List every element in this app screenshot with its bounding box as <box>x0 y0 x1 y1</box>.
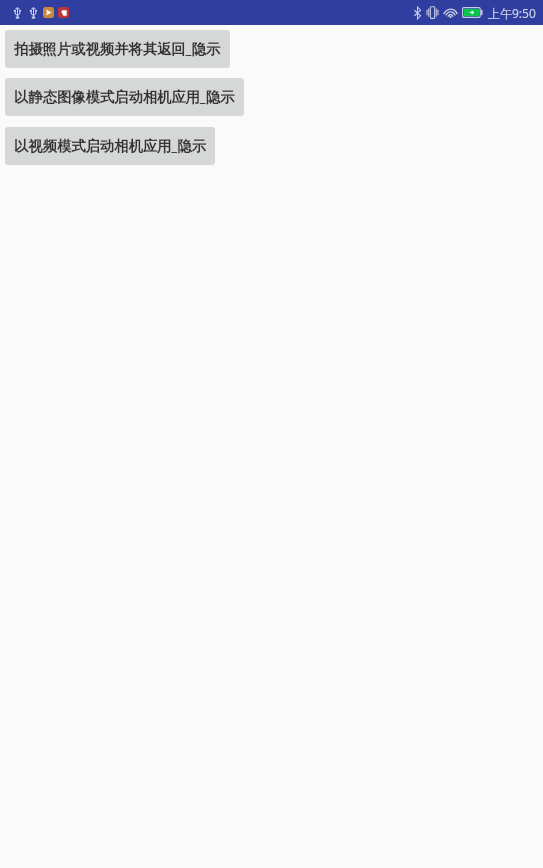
button[interactable]: 以静态图像模式启动相机应用_隐示 <box>5 78 244 116</box>
other: Battery charging <box>462 7 483 18</box>
other: Ringer vibrate <box>425 6 440 19</box>
other: Bluetooth on <box>414 7 421 19</box>
other: USB connected <box>29 7 38 19</box>
staticText: 以静态图像模式启动相机应用_隐示 <box>14 87 235 107</box>
staticText: 拍摄照片或视频并将其返回_隐示 <box>14 39 221 59</box>
staticText: 上午9:50 <box>488 5 536 21</box>
staticText: 以视频模式启动相机应用_隐示 <box>14 136 206 156</box>
other: Notification <box>58 7 69 18</box>
other: USB connected <box>13 7 22 19</box>
other: Wi-Fi signal full <box>443 7 458 18</box>
button[interactable]: 拍摄照片或视频并将其返回_隐示 <box>5 30 230 68</box>
other: Notification <box>43 7 54 18</box>
button[interactable]: 以视频模式启动相机应用_隐示 <box>5 127 215 165</box>
